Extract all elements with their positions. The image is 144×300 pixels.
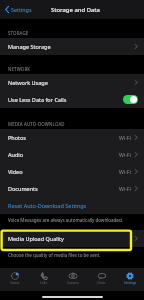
staticText: Camera bbox=[67, 281, 79, 285]
staticText: STORAGE bbox=[8, 30, 29, 36]
staticText: Audio bbox=[8, 151, 24, 158]
button[interactable]: Use Less Data for Calls bbox=[0, 91, 144, 108]
staticText: Network Usage bbox=[8, 79, 48, 86]
staticText: Storage and Data bbox=[51, 6, 100, 14]
staticText: Media Upload Quality bbox=[8, 235, 64, 242]
staticText: Choose the quality of media files to be … bbox=[8, 252, 101, 258]
button[interactable]: Status bbox=[0, 268, 29, 291]
button[interactable]: Reset Auto-Download Settings bbox=[0, 197, 144, 214]
button[interactable]: Network Usage bbox=[0, 74, 144, 91]
button[interactable]: Settings bbox=[0, 3, 36, 16]
button[interactable]: Chats bbox=[87, 268, 116, 291]
staticText: Settings bbox=[11, 6, 32, 13]
staticText: Wi-Fi bbox=[119, 151, 131, 158]
staticText: Video bbox=[8, 168, 23, 175]
staticText: Chats bbox=[97, 281, 106, 285]
button[interactable]: Audio bbox=[0, 146, 144, 163]
button[interactable]: Documents bbox=[0, 180, 144, 197]
staticText: MEDIA AUTO-DOWNLOAD bbox=[8, 121, 65, 127]
button[interactable]: Manage Storage bbox=[0, 38, 144, 55]
staticText: Status bbox=[10, 281, 20, 285]
button[interactable]: Camera bbox=[58, 268, 87, 291]
button[interactable]: Media Upload Quality bbox=[0, 230, 144, 247]
staticText: Settings bbox=[124, 281, 137, 285]
staticText: Documents bbox=[8, 185, 38, 192]
staticText: Manage Storage bbox=[8, 43, 51, 50]
staticText: Wi-Fi bbox=[119, 168, 131, 175]
button[interactable]: Calls bbox=[29, 268, 58, 291]
button[interactable]: Video bbox=[0, 163, 144, 180]
staticText: Voice Messages are always automatically … bbox=[8, 217, 123, 223]
button[interactable]: Photos bbox=[0, 129, 144, 146]
staticText: Photos bbox=[8, 134, 27, 141]
staticText: Wi-Fi bbox=[119, 134, 131, 141]
staticText: Reset Auto-Download Settings bbox=[8, 202, 87, 209]
staticText: Wi-Fi bbox=[119, 185, 131, 192]
button[interactable]: Settings bbox=[116, 268, 144, 291]
staticText: Calls bbox=[40, 281, 47, 285]
staticText: NETWORK bbox=[8, 66, 31, 72]
staticText: Use Less Data for Calls bbox=[8, 96, 67, 103]
